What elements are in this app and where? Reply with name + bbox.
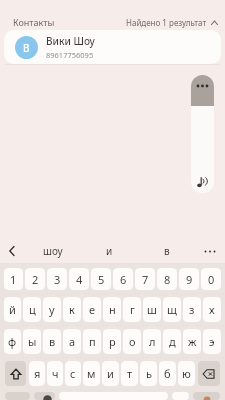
staticText: и (106, 244, 113, 258)
staticText: г (130, 302, 135, 317)
button[interactable]: п (83, 329, 101, 354)
button[interactable] (193, 392, 220, 400)
button[interactable]: д (163, 329, 181, 354)
button[interactable]: 4 (69, 268, 89, 290)
staticText: д (169, 334, 176, 349)
staticText: Найдено 1 результат (126, 17, 207, 28)
button[interactable]: о (123, 329, 141, 354)
button[interactable]: 6 (113, 268, 133, 290)
button[interactable]: ь (140, 361, 157, 386)
staticText: 0 (208, 272, 215, 287)
button[interactable] (172, 392, 189, 400)
staticText: е (89, 302, 96, 317)
button[interactable]: и (102, 361, 119, 386)
staticText: в (49, 334, 56, 349)
button[interactable]: б (159, 361, 176, 386)
staticText: м (87, 366, 96, 381)
button[interactable]: ч (47, 361, 63, 386)
staticText: х (209, 302, 215, 317)
staticText: т (127, 366, 133, 381)
button[interactable]: й (4, 297, 21, 322)
button[interactable]: к (63, 297, 81, 322)
staticText: 6 (120, 272, 127, 287)
button[interactable]: 0 (201, 268, 221, 290)
button[interactable]: э (203, 329, 221, 354)
button[interactable]: м (83, 361, 100, 386)
staticText: Контакты (13, 16, 55, 28)
button[interactable]: в (43, 329, 61, 354)
button[interactable]: щ (163, 297, 181, 322)
staticText: н (109, 302, 116, 317)
button[interactable]: с (65, 361, 81, 386)
button[interactable]: 1 (4, 268, 23, 290)
button[interactable]: г (123, 297, 141, 322)
staticText: 89617756095 (46, 50, 94, 60)
button[interactable]: р (103, 329, 121, 354)
staticText: о (129, 334, 136, 349)
button[interactable]: 7 (135, 268, 155, 290)
staticText: 5 (98, 272, 105, 287)
button[interactable] (195, 240, 225, 262)
staticText: в (164, 244, 170, 258)
staticText: я (34, 366, 41, 381)
staticText: В (23, 41, 30, 55)
staticText: 9 (186, 272, 193, 287)
button[interactable] (191, 75, 214, 193)
button[interactable]: а (63, 329, 81, 354)
button[interactable] (0, 240, 24, 262)
button[interactable]: ф (4, 329, 21, 354)
staticText: э (209, 334, 215, 349)
button[interactable]: я (29, 361, 45, 386)
staticText: с (70, 366, 76, 381)
staticText: 4 (76, 272, 83, 287)
button[interactable]: !#1 (5, 392, 30, 400)
staticText: ц (29, 302, 36, 317)
button[interactable]: ш (143, 297, 161, 322)
button[interactable]: 5 (91, 268, 111, 290)
staticText: р (109, 334, 116, 349)
button[interactable]: в (138, 240, 195, 262)
staticText: з (189, 302, 195, 317)
button[interactable]: з (183, 297, 201, 322)
staticText: шоу (43, 244, 63, 258)
staticText: 1 (10, 272, 17, 287)
button[interactable]: ю (178, 361, 195, 386)
staticText: Вики Шоу (46, 34, 95, 48)
button[interactable]: т (121, 361, 138, 386)
staticText: б (164, 366, 171, 381)
staticText: и (107, 366, 114, 381)
button[interactable]: 2 (25, 268, 45, 290)
staticText: п (89, 334, 96, 349)
button[interactable]: х (203, 297, 221, 322)
staticText: ь (146, 366, 152, 381)
staticText: ы (28, 334, 37, 349)
button[interactable]: е (83, 297, 101, 322)
button[interactable] (5, 361, 26, 386)
button[interactable]: и (81, 240, 138, 262)
staticText: ш (147, 302, 157, 317)
button[interactable] (198, 361, 220, 386)
staticText: 8 (164, 272, 171, 287)
staticText: ф (8, 334, 17, 349)
button[interactable]: ы (23, 329, 41, 354)
staticText: ю (182, 366, 191, 381)
button[interactable]: у (43, 297, 61, 322)
staticText: 7 (142, 272, 149, 287)
staticText: ж (188, 334, 197, 349)
staticText: к (69, 302, 75, 317)
button[interactable]: ж (183, 329, 201, 354)
staticText: а (69, 334, 76, 349)
staticText: л (149, 334, 156, 349)
button[interactable]: шоу (24, 240, 81, 262)
button[interactable]: л (143, 329, 161, 354)
button[interactable]: 8 (157, 268, 177, 290)
button[interactable]: В (4, 30, 221, 64)
button[interactable]: ц (23, 297, 41, 322)
staticText: 2 (32, 272, 39, 287)
button[interactable]: 9 (179, 268, 199, 290)
button[interactable] (34, 392, 55, 400)
button[interactable]: н (103, 297, 121, 322)
button[interactable]: 3 (47, 268, 67, 290)
